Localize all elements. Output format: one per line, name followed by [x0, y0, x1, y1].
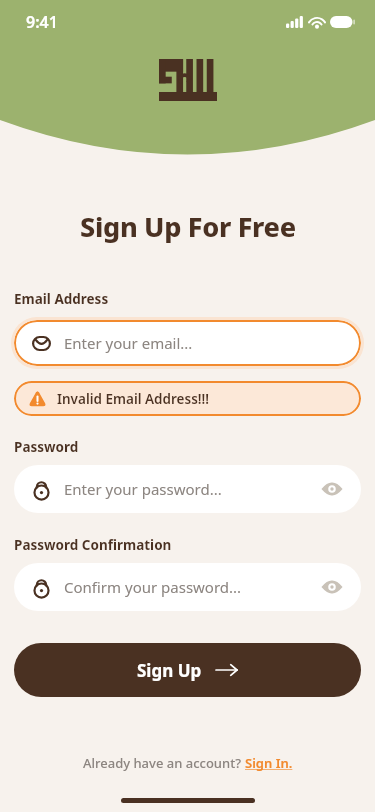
button[interactable]: Enter your password... [14, 465, 361, 513]
button[interactable]: Confirm your password... [14, 563, 361, 611]
staticText: Enter your password... [64, 479, 222, 499]
staticText: Sign In. [245, 754, 293, 772]
staticText: Enter your email... [64, 333, 193, 353]
button[interactable]: Show password [319, 476, 345, 502]
staticText: Sign Up For Free [80, 208, 296, 245]
staticText: Sign Up [137, 659, 202, 682]
staticText: Email Address [14, 290, 109, 308]
button[interactable]: Sign Up [14, 643, 361, 697]
staticText: Password [14, 438, 79, 456]
button[interactable]: Show password [319, 574, 345, 600]
button[interactable]: Sign In. [245, 754, 293, 772]
button[interactable]: Enter your email... [14, 320, 361, 366]
staticText: Password Confirmation [14, 536, 172, 554]
staticText: Invalid Email Address!!! [57, 390, 210, 408]
staticText: Confirm your password... [64, 577, 242, 597]
staticText: Already have an account? [83, 754, 245, 772]
staticText: 9:41 [26, 11, 58, 33]
